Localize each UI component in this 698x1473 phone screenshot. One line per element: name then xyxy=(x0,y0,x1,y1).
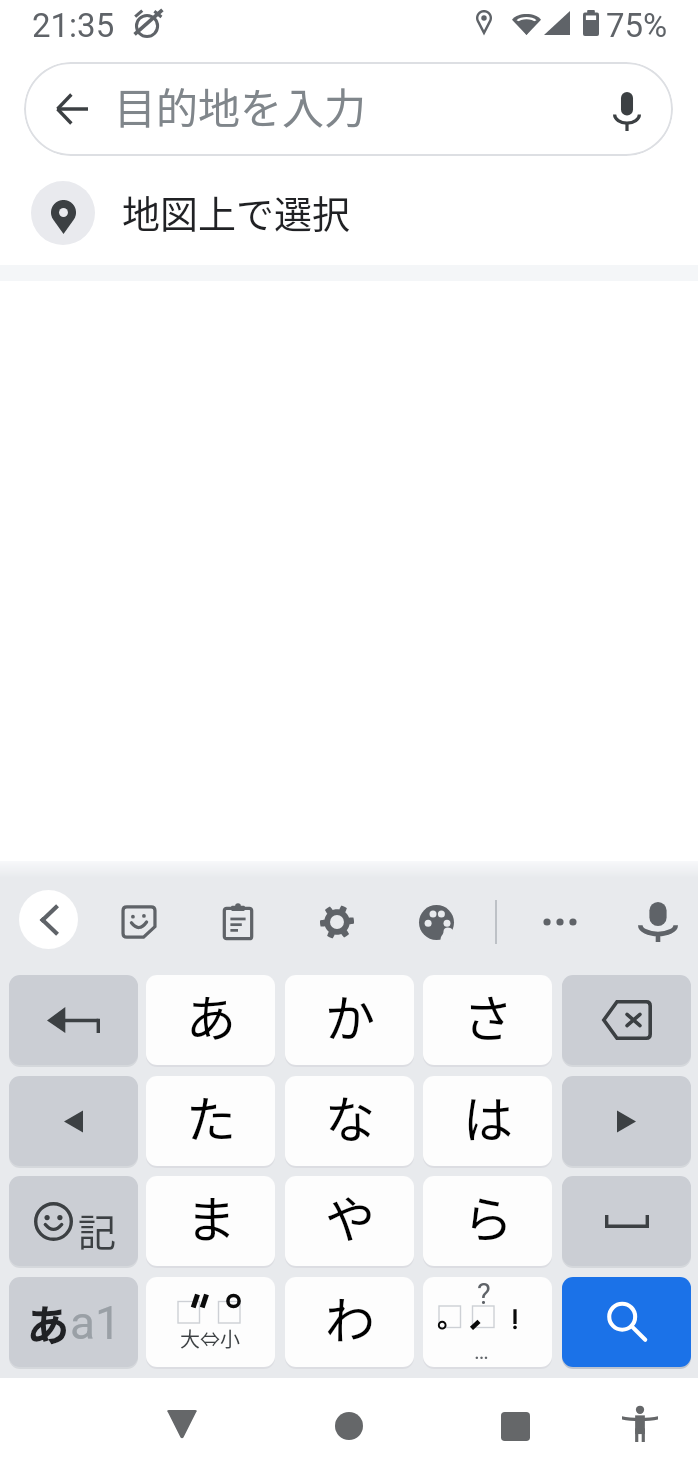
button[interactable]: た xyxy=(146,1076,275,1166)
button[interactable]: Search xyxy=(562,1277,691,1367)
button[interactable]: Move cursor right xyxy=(562,1076,691,1166)
button[interactable]: か xyxy=(285,975,414,1065)
staticText: や xyxy=(325,1180,375,1252)
button[interactable]: Voice search xyxy=(589,62,664,156)
button[interactable]: Stickers xyxy=(106,889,172,955)
staticText: … xyxy=(474,1339,489,1365)
button[interactable]: Back xyxy=(148,1390,216,1458)
button[interactable]: は xyxy=(423,1076,552,1166)
staticText: な xyxy=(325,1080,375,1152)
button[interactable]: Backspace xyxy=(562,975,691,1065)
staticText: わ xyxy=(325,1281,375,1353)
staticText: 地図上で選択 xyxy=(122,184,351,239)
button[interactable]: Enter xyxy=(9,975,138,1065)
staticText: あ xyxy=(186,979,236,1051)
button[interactable]: More options xyxy=(527,889,593,955)
button[interactable]: な xyxy=(285,1076,414,1166)
button[interactable]: Home xyxy=(315,1392,383,1460)
button[interactable]: さ xyxy=(423,975,552,1065)
staticText: 75% xyxy=(606,6,668,45)
button[interactable]: Settings xyxy=(304,889,370,955)
button[interactable]: ま xyxy=(146,1176,275,1266)
staticText: あ xyxy=(27,1292,70,1353)
button[interactable]: Close toolbar xyxy=(19,890,78,949)
staticText: は xyxy=(463,1080,513,1152)
staticText: 記 xyxy=(78,1202,117,1257)
button[interactable]: ら xyxy=(423,1176,552,1266)
button[interactable]: Clipboard xyxy=(205,889,271,955)
button[interactable]: Voice input xyxy=(625,889,691,955)
button[interactable]: Move cursor left xyxy=(9,1076,138,1166)
button[interactable]: や xyxy=(285,1176,414,1266)
staticText: さ xyxy=(463,979,513,1051)
button[interactable]: Switch input mode xyxy=(9,1277,138,1367)
button[interactable]: Recents xyxy=(481,1392,549,1460)
button[interactable]: あ xyxy=(146,975,275,1065)
staticText: 21:35 xyxy=(32,6,115,45)
staticText: 大⇔小 xyxy=(180,1324,240,1353)
staticText: か xyxy=(325,979,375,1051)
staticText: ま xyxy=(186,1180,236,1252)
button[interactable]: Back xyxy=(24,62,118,156)
button[interactable]: Emoji and symbols xyxy=(9,1176,138,1266)
button[interactable]: Space xyxy=(562,1176,691,1266)
button[interactable]: 地図上で選択 xyxy=(0,161,698,265)
staticText: 目的地を入力 xyxy=(114,75,367,136)
button[interactable]: Punctuation xyxy=(423,1277,552,1367)
button[interactable]: Voiced sound mark xyxy=(146,1277,275,1367)
button[interactable]: Accessibility xyxy=(606,1390,674,1458)
staticText: た xyxy=(186,1080,236,1152)
staticText: ら xyxy=(463,1180,513,1252)
staticText: ? xyxy=(477,1277,491,1311)
button[interactable]: Theme xyxy=(403,889,469,955)
staticText: a1 xyxy=(70,1296,121,1350)
button[interactable]: Back xyxy=(24,62,673,156)
button[interactable]: わ xyxy=(285,1277,414,1367)
